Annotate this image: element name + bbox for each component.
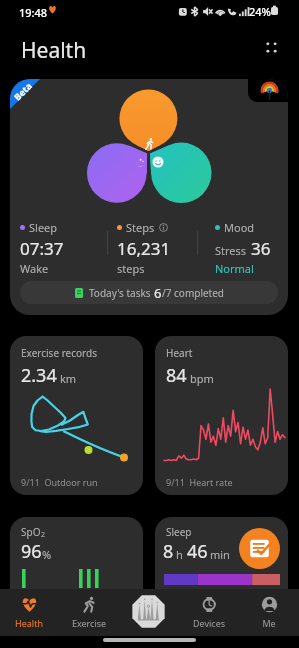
staticText: Exercise records — [21, 346, 97, 360]
staticText: 9/11 Heart rate — [166, 476, 233, 488]
staticText: 07:37 — [20, 237, 64, 260]
staticText: 8 — [163, 539, 174, 564]
staticText: 24% — [249, 4, 271, 19]
staticText: min — [210, 547, 230, 562]
staticText: 36 — [251, 237, 271, 260]
staticText: Heart — [166, 346, 193, 360]
staticText: Normal — [215, 261, 254, 276]
staticText: steps — [117, 261, 145, 276]
button[interactable]: Me — [244, 589, 294, 636]
staticText: /7 completed — [162, 286, 225, 300]
staticText: SpO — [21, 525, 41, 539]
staticText: Wake — [20, 261, 49, 276]
staticText: h — [176, 547, 183, 562]
staticText: 46 — [187, 539, 208, 564]
staticText: Devices — [184, 617, 234, 629]
staticText: Me — [244, 617, 294, 629]
button[interactable]: Together — [131, 594, 166, 629]
button[interactable]: Heart — [155, 336, 288, 495]
staticText: Exercise — [64, 617, 114, 629]
staticText: km — [60, 371, 77, 386]
button[interactable]: Sleep — [155, 517, 288, 607]
staticText: Stress — [215, 243, 247, 258]
staticText: 84 — [166, 363, 187, 388]
staticText: % — [42, 547, 52, 562]
staticText: Mood — [224, 220, 255, 235]
staticText: Sleep — [29, 220, 58, 235]
button[interactable]: Health — [4, 589, 54, 636]
button[interactable]: Today's tasks — [20, 281, 278, 304]
button[interactable]: Exercise — [64, 589, 114, 636]
button[interactable]: Beta — [10, 79, 288, 315]
staticText: Beta — [11, 79, 34, 103]
button[interactable]: Exercise records — [10, 336, 143, 495]
button[interactable]: More options — [255, 31, 287, 63]
staticText: Health — [4, 617, 54, 629]
staticText: Health — [21, 36, 87, 65]
button[interactable]: Devices — [184, 589, 234, 636]
staticText: 2 — [41, 530, 46, 540]
staticText: 6 — [154, 284, 162, 302]
staticText: Steps — [126, 220, 155, 235]
staticText: 96 — [21, 539, 42, 564]
button[interactable]: SpO — [10, 517, 143, 607]
staticText: Sleep — [166, 525, 192, 539]
staticText: bpm — [190, 371, 214, 386]
button[interactable]: Rainbow badge — [248, 79, 288, 102]
staticText: 9/11 Outdoor run — [21, 476, 98, 488]
staticText: 19:48 — [19, 5, 48, 20]
button[interactable]: Tasks — [239, 528, 280, 569]
staticText: 2.34 — [21, 363, 57, 388]
staticText: Today's tasks — [89, 286, 154, 300]
staticText: 16,231 — [117, 237, 171, 260]
